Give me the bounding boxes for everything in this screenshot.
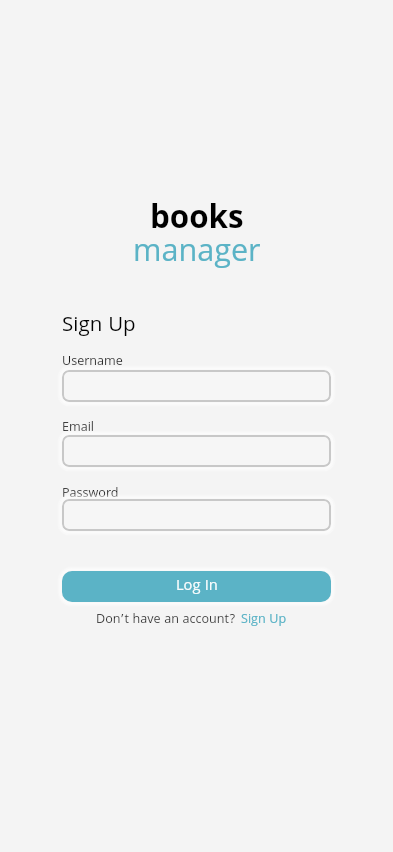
button[interactable] bbox=[62, 435, 331, 467]
staticText: manager bbox=[133, 228, 261, 281]
staticText: Username bbox=[62, 351, 123, 373]
staticText: Email bbox=[62, 417, 95, 439]
button[interactable] bbox=[62, 499, 331, 531]
staticText: Don’t have an account? bbox=[96, 609, 236, 631]
button[interactable]: Sign Up bbox=[241, 609, 287, 631]
staticText: Sign Up bbox=[241, 609, 287, 631]
button[interactable]: Log In bbox=[62, 571, 331, 602]
staticText: Sign Up bbox=[62, 309, 136, 344]
staticText: Log In bbox=[176, 574, 218, 599]
staticText: Password bbox=[62, 483, 119, 505]
staticText: books bbox=[150, 194, 244, 248]
button[interactable] bbox=[62, 370, 331, 402]
